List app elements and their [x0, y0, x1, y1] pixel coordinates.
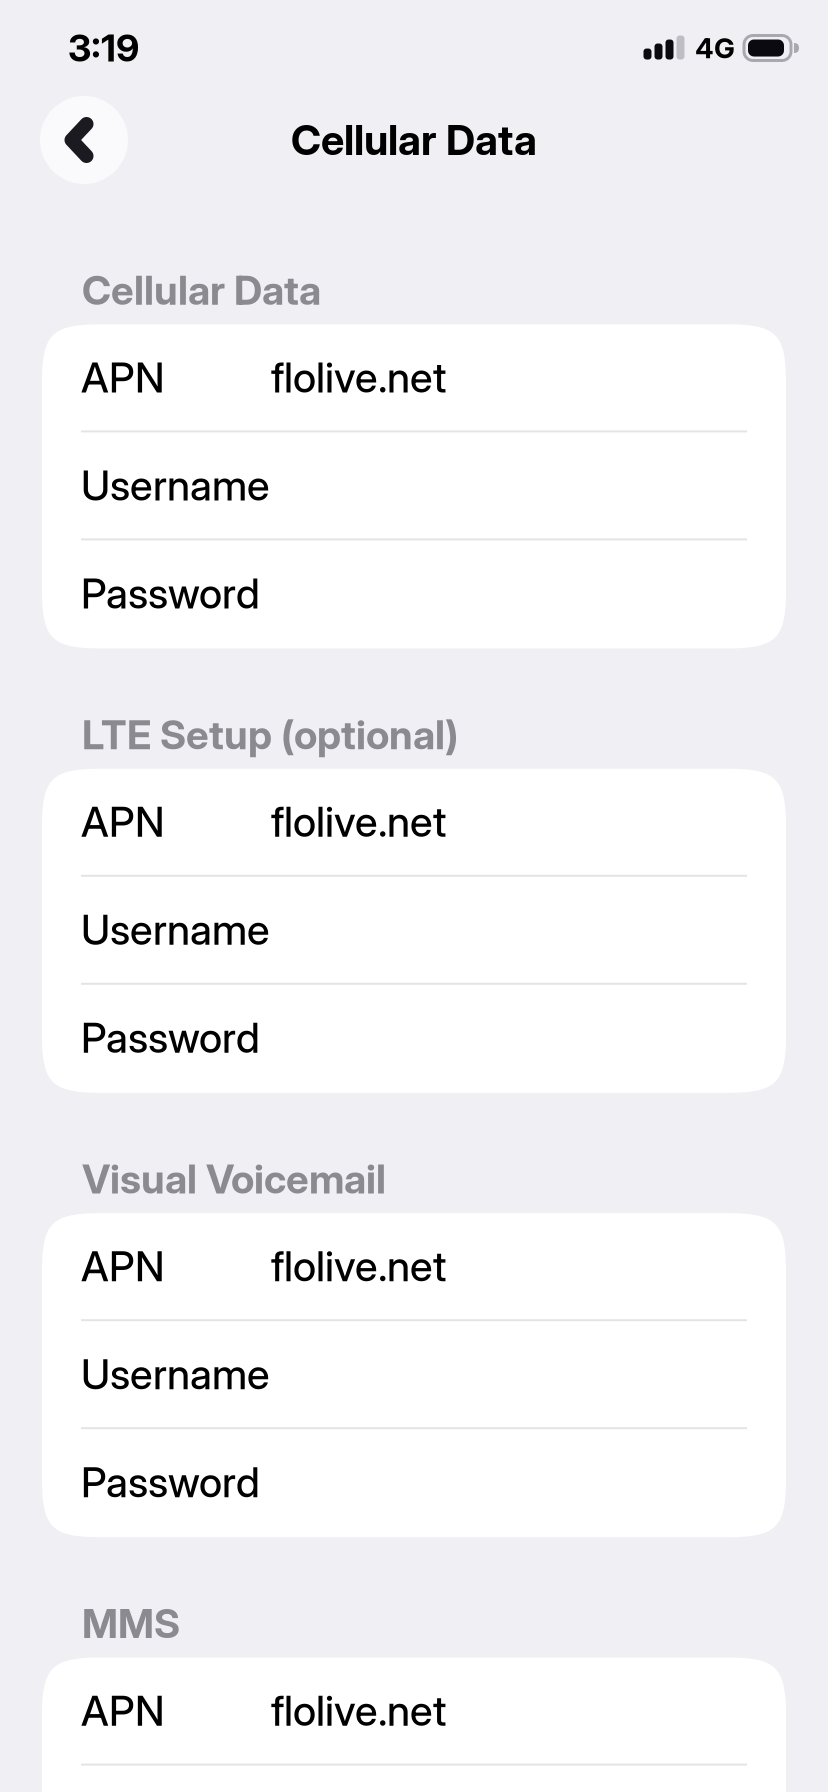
staticText: Username [81, 1349, 270, 1399]
staticText: Cellular Data [291, 115, 537, 165]
staticText: 4G [695, 31, 735, 65]
staticText: Cellular Data [82, 266, 321, 314]
button[interactable]: APN [42, 1658, 786, 1766]
button[interactable]: Back [40, 96, 128, 184]
staticText: Password [81, 1457, 260, 1507]
button[interactable]: Password [42, 985, 786, 1093]
staticText: flolive.net [271, 1241, 446, 1291]
staticText: Username [81, 460, 270, 510]
staticText: Visual Voicemail [82, 1155, 386, 1203]
button[interactable]: APN [42, 1213, 786, 1321]
staticText: APN [81, 1686, 165, 1736]
button[interactable]: APN [42, 769, 786, 877]
staticText: MMS [82, 1599, 180, 1648]
staticText: APN [81, 352, 165, 402]
button[interactable]: Password [42, 540, 786, 648]
button[interactable]: APN [42, 324, 786, 432]
button[interactable]: Username [42, 432, 786, 540]
staticText: LTE Setup (optional) [82, 710, 458, 759]
staticText: Password [81, 568, 260, 618]
staticText: Password [81, 1013, 260, 1063]
staticText: flolive.net [271, 1686, 446, 1736]
staticText: 3:19 [68, 25, 139, 71]
staticText: flolive.net [271, 352, 446, 402]
staticText: flolive.net [271, 797, 446, 847]
button[interactable]: Username [42, 877, 786, 985]
staticText: APN [81, 1241, 165, 1291]
button[interactable]: Username [42, 1321, 786, 1429]
staticText: APN [81, 797, 165, 847]
staticText: Username [81, 905, 270, 955]
button[interactable]: Password [42, 1429, 786, 1537]
